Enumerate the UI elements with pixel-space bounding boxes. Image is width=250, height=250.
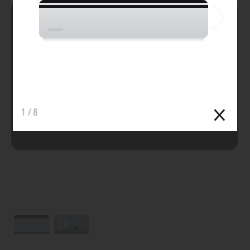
- button[interactable]: Close: [214, 109, 225, 121]
- button[interactable]: Photo 1: [14, 215, 49, 234]
- staticText: 1 / 8: [21, 107, 38, 118]
